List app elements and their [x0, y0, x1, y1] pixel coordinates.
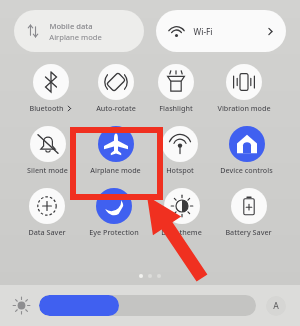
button[interactable]: Device controls [220, 126, 273, 175]
staticText: Airplane mode [49, 32, 102, 42]
button[interactable]: Dark theme [161, 188, 202, 237]
button[interactable]: Auto brightness [266, 296, 286, 316]
button[interactable]: Auto-rotate [96, 64, 136, 113]
staticText: Silent mode [27, 165, 68, 175]
button[interactable]: Eye Protection [89, 188, 139, 237]
button[interactable]: Mobile data [14, 10, 144, 52]
staticText: Auto-rotate [96, 103, 136, 113]
staticText: Wi-Fi [193, 26, 213, 37]
staticText: Bluetooth [29, 103, 64, 113]
button[interactable]: Brightness [39, 295, 256, 316]
staticText: Data Saver [28, 227, 66, 237]
button[interactable]: Silent mode [27, 126, 68, 175]
staticText: Flashlight [159, 103, 193, 113]
button[interactable]: Bluetooth [29, 64, 73, 113]
button[interactable]: Wi-Fi [156, 10, 286, 52]
staticText: Vibration mode [217, 103, 271, 113]
staticText: A [273, 300, 279, 312]
staticText: Mobile data [49, 21, 93, 31]
staticText: Dark theme [161, 227, 202, 237]
button[interactable]: Hotspot [162, 126, 198, 175]
button[interactable]: Vibration mode [217, 64, 271, 113]
button[interactable]: Data Saver [28, 188, 66, 237]
button[interactable]: Battery Saver [225, 188, 272, 237]
staticText: Airplane mode [90, 165, 141, 175]
staticText: Device controls [220, 165, 273, 175]
staticText: Battery Saver [225, 227, 272, 237]
staticText: Eye Protection [89, 227, 139, 237]
staticText: Hotspot [166, 165, 194, 175]
button[interactable]: Flashlight [158, 64, 194, 113]
button[interactable]: Airplane mode [90, 126, 141, 175]
